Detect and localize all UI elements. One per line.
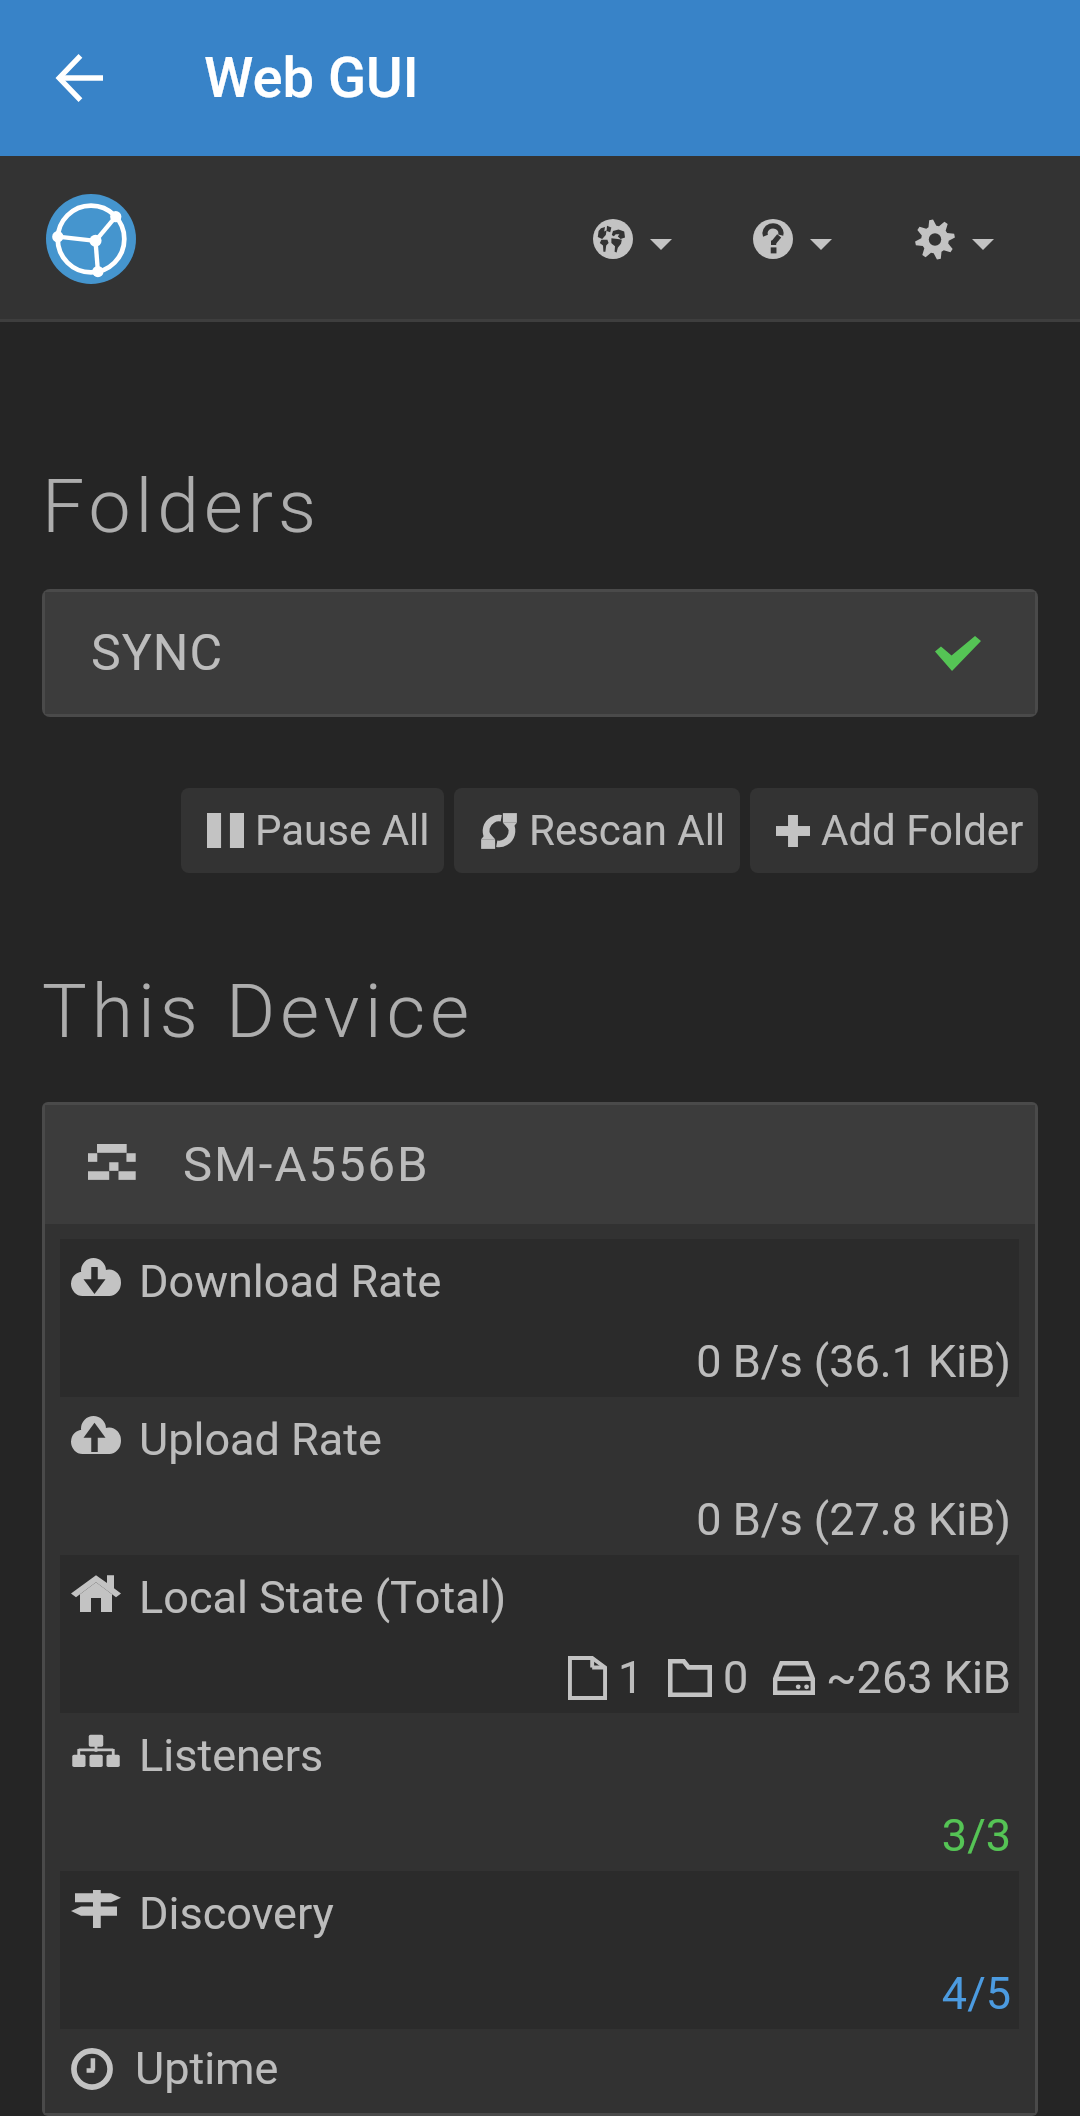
button[interactable]: Help: [753, 219, 832, 259]
staticText: 3/3: [71, 1809, 1011, 1862]
button[interactable]: Language: [593, 219, 672, 259]
staticText: Download Rate: [139, 1255, 442, 1308]
button[interactable]: Uptime: [60, 2029, 1019, 2113]
staticText: 0 B/s (27.8 KiB): [71, 1493, 1011, 1546]
staticText: 0 B/s (36.1 KiB): [71, 1335, 1011, 1388]
staticText: 0: [723, 1651, 749, 1704]
staticText: Pause All: [255, 806, 430, 855]
staticText: This Device: [42, 967, 474, 1055]
staticText: Uptime: [135, 2042, 279, 2095]
staticText: ~263 KiB: [826, 1651, 1011, 1704]
button[interactable]: Actions: [915, 217, 994, 262]
button[interactable]: Add Folder: [750, 788, 1038, 873]
staticText: Listeners: [139, 1729, 324, 1782]
button[interactable]: Navigate up: [22, 21, 136, 135]
staticText: Web GUI: [204, 45, 419, 111]
staticText: 1: [618, 1651, 644, 1704]
staticText: Local State (Total): [139, 1571, 507, 1624]
staticText: Discovery: [139, 1887, 334, 1940]
button[interactable]: Pause All: [181, 788, 444, 873]
button[interactable]: Listeners: [60, 1713, 1019, 1871]
staticText: Rescan All: [529, 806, 726, 855]
staticText: Add Folder: [821, 806, 1024, 855]
button[interactable]: Download Rate: [60, 1239, 1019, 1397]
staticText: SM-A556B: [183, 1136, 430, 1193]
staticText: Folders: [42, 462, 322, 550]
button[interactable]: Local State (Total): [60, 1555, 1019, 1713]
button[interactable]: Syncthing home: [46, 194, 136, 284]
staticText: Upload Rate: [139, 1413, 382, 1466]
button[interactable]: SYNC: [45, 592, 1035, 714]
button[interactable]: Discovery: [60, 1871, 1019, 2029]
button[interactable]: Rescan All: [454, 788, 740, 873]
button[interactable]: Upload Rate: [60, 1397, 1019, 1555]
staticText: SYNC: [91, 624, 223, 683]
button[interactable]: SM-A556B: [45, 1105, 1035, 1224]
staticText: 4/5: [71, 1967, 1011, 2020]
